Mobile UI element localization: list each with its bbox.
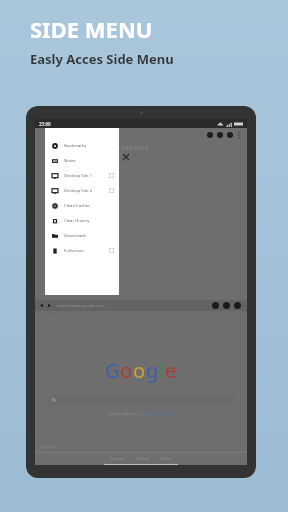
staticText: Google offered in: (109, 411, 140, 416)
staticText: Notes (64, 158, 114, 164)
staticText: o (133, 357, 146, 384)
button[interactable]: Desktop Site 1 (45, 168, 119, 183)
button[interactable]: Tab (207, 132, 213, 138)
button[interactable]: Forward (47, 303, 52, 308)
staticText: o (120, 357, 133, 384)
button[interactable]: Tab (227, 132, 233, 138)
button[interactable]: Fullscreen (45, 243, 119, 258)
button[interactable]: Downloads (45, 228, 119, 243)
staticText: Bookmarks (64, 143, 114, 149)
button[interactable]: Settings (110, 456, 126, 461)
staticText: BOOKMARKS (113, 145, 149, 151)
button[interactable]: Clean Caches (45, 198, 119, 213)
button[interactable]: Bookmarks (45, 138, 119, 153)
button[interactable]: Clear History (45, 213, 119, 228)
staticText: Clear History (64, 218, 114, 224)
staticText: Desktop Site 2 (64, 188, 109, 194)
button[interactable]: Notes (45, 153, 119, 168)
button[interactable]: Tab (217, 132, 223, 138)
button[interactable]: Tab (234, 302, 241, 309)
button[interactable]: Desktop Site 2 (45, 183, 119, 198)
staticText: 23:00 (39, 121, 51, 127)
button[interactable]: Back (39, 303, 44, 308)
staticText: SIDE MENU (30, 14, 153, 44)
staticText: g (146, 357, 159, 384)
button[interactable]: Close (123, 154, 129, 160)
button[interactable]: Türkçe (162, 411, 174, 416)
button[interactable]: Ελληνικά (143, 411, 159, 416)
staticText: Cyprus (41, 444, 55, 449)
staticText: Fullscreen (64, 248, 109, 254)
button[interactable]: Privacy (136, 456, 150, 461)
staticText: e (165, 357, 177, 384)
staticText: Desktop Site 1 (64, 173, 109, 179)
staticText: l (159, 357, 165, 384)
button[interactable]: Tab (212, 302, 219, 309)
staticText: Downloads (64, 233, 114, 239)
staticText: https://www.google.com/ (57, 303, 210, 308)
staticText: Clean Caches (64, 203, 114, 209)
button[interactable]: Tab (223, 302, 230, 309)
button[interactable]: Terms (160, 456, 172, 461)
staticText: Easly Acces Side Menu (30, 50, 174, 68)
button[interactable]: More options (237, 131, 241, 139)
staticText: G (105, 357, 120, 384)
